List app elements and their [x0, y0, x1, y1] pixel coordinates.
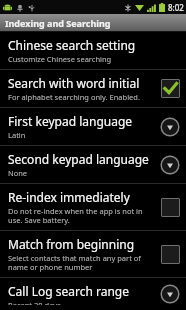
staticText: Match from beginning [8, 236, 135, 252]
staticText: 8:02 [168, 2, 184, 13]
staticText: Chinese search setting [8, 37, 136, 53]
button[interactable]: Open options [160, 117, 180, 137]
button[interactable]: Checked [161, 79, 180, 98]
button[interactable]: Second keypad language [0, 146, 186, 183]
button[interactable]: Call Log search range [0, 278, 186, 310]
button[interactable]: Search with word initial [0, 70, 186, 107]
staticText: Latin [8, 130, 26, 140]
staticText: Customize Chinese searching [8, 54, 112, 64]
staticText: Re-index immediately [8, 189, 130, 205]
staticText: Call Log search range [8, 283, 129, 299]
button[interactable]: Unchecked [161, 198, 180, 217]
button[interactable]: Unchecked [161, 245, 180, 264]
staticText: Search with word initial [8, 75, 140, 91]
button[interactable]: Chinese search setting [0, 32, 186, 69]
staticText: Recent 30 days [8, 300, 61, 305]
button[interactable]: Match from beginning [0, 231, 186, 277]
staticText: Do not re-index when the app is not in u… [8, 206, 157, 225]
button[interactable]: First keypad language [0, 108, 186, 145]
staticText: First keypad language [8, 113, 133, 129]
staticText: For alphabet searching only. Enabled. [8, 92, 140, 102]
button[interactable]: Open options [160, 155, 180, 175]
staticText: Select contacts that match any part of n… [8, 253, 157, 272]
button[interactable]: Re-index immediately [0, 184, 186, 230]
button[interactable]: Open options [160, 284, 180, 304]
staticText: Second keypad language [8, 151, 149, 167]
staticText: None [8, 168, 28, 178]
staticText: Indexing and Searching [5, 17, 111, 29]
